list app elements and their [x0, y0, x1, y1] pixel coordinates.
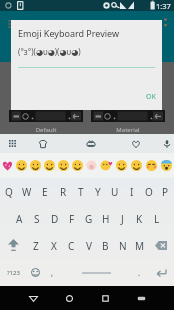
button[interactable]: Switch keyboard [123, 286, 159, 310]
button[interactable]: Objects [83, 134, 99, 153]
button[interactable]: Favorites [128, 134, 144, 153]
button[interactable]: More options [161, 18, 169, 26]
button[interactable]: Emoji 5 [70, 153, 84, 178]
staticText: Z [33, 239, 39, 253]
button[interactable]: Emoji 2 [28, 153, 42, 178]
button[interactable]: J [114, 205, 131, 232]
button[interactable]: B [97, 232, 114, 259]
button[interactable]: Emoji 4 [56, 153, 70, 178]
staticText: T [78, 185, 84, 199]
button[interactable]: A [10, 205, 28, 232]
button[interactable]: M [131, 232, 148, 259]
staticText: G [85, 212, 93, 226]
button[interactable]: H [97, 205, 114, 232]
button[interactable]: Z [27, 232, 45, 259]
staticText: S [34, 212, 40, 226]
button[interactable]: D [46, 205, 63, 232]
staticText: F [69, 212, 75, 226]
button[interactable]: Emoji 1 [14, 153, 28, 178]
button[interactable]: ?123 [0, 259, 27, 286]
staticText: J [121, 212, 124, 226]
staticText: 1:37 [156, 1, 171, 11]
button[interactable]: OK [142, 89, 160, 105]
staticText: O [145, 185, 153, 199]
button[interactable]: Emoji 8 [114, 153, 129, 178]
staticText: Y [95, 185, 101, 199]
staticText: (°з°)(◕υ◕)(◕υ◕) [18, 46, 81, 57]
button[interactable]: E [36, 178, 54, 205]
staticText: X [51, 239, 57, 253]
button[interactable]: Back [15, 286, 51, 310]
button[interactable]: Emoji 3 [42, 153, 56, 178]
button[interactable]: Emoji 6 [84, 153, 99, 178]
button[interactable]: Menu [3, 18, 15, 30]
staticText: Q [5, 185, 13, 199]
staticText: Default [9, 126, 83, 134]
button[interactable]: G [80, 205, 97, 232]
button[interactable]: Space [61, 259, 131, 286]
staticText: . [138, 267, 141, 278]
button[interactable]: N [114, 232, 131, 259]
button[interactable]: C [63, 232, 80, 259]
staticText: K [136, 212, 143, 226]
staticText: Material [91, 126, 165, 134]
staticText: W [22, 185, 32, 199]
staticText: R [60, 185, 67, 199]
staticText: B [102, 239, 109, 253]
button[interactable]: Emoji keyboard [27, 259, 44, 286]
staticText: OK [146, 92, 156, 102]
button[interactable]: I [123, 178, 140, 205]
button[interactable]: , [44, 259, 61, 286]
staticText: I [130, 185, 134, 199]
button[interactable]: X [45, 232, 63, 259]
button[interactable]: Shift [0, 232, 27, 259]
staticText: H [102, 212, 110, 226]
button[interactable]: Home [51, 286, 87, 310]
staticText: L [154, 212, 160, 226]
button[interactable]: . [131, 259, 148, 286]
button[interactable]: Emoji 10 [144, 153, 159, 178]
staticText: N [119, 239, 127, 253]
staticText: U [111, 185, 119, 199]
button[interactable]: Voice input [159, 134, 174, 153]
staticText: , [51, 267, 54, 278]
button[interactable]: P [157, 178, 174, 205]
staticText: E [42, 185, 48, 199]
button[interactable]: V [80, 232, 97, 259]
button[interactable]: Emoji 7 [99, 153, 114, 178]
button[interactable]: T [72, 178, 89, 205]
button[interactable]: W [18, 178, 36, 205]
staticText: A [16, 212, 23, 226]
button[interactable]: Recents [87, 286, 123, 310]
staticText: V [86, 239, 92, 253]
button[interactable]: O [140, 178, 157, 205]
button[interactable]: Emoji 9 [129, 153, 144, 178]
staticText: D [51, 212, 59, 226]
staticText: Emoji Keyboard Preview [18, 27, 120, 39]
button[interactable]: People [35, 134, 51, 153]
staticText: C [68, 239, 75, 253]
button[interactable]: Backspace [148, 232, 174, 259]
button[interactable]: F [63, 205, 80, 232]
button[interactable]: Emoji 11 [159, 153, 174, 178]
button[interactable]: Y [89, 178, 106, 205]
button[interactable]: Emoji 0 [0, 153, 14, 178]
staticText: P [162, 185, 169, 199]
button[interactable]: S [28, 205, 46, 232]
button[interactable]: Q [0, 178, 18, 205]
button[interactable]: Recently used [5, 134, 21, 153]
button[interactable]: K [131, 205, 148, 232]
staticText: M [135, 239, 145, 253]
button[interactable]: R [54, 178, 72, 205]
staticText: ?123 [7, 269, 20, 277]
button[interactable]: Enter [148, 259, 174, 286]
button[interactable]: L [148, 205, 165, 232]
button[interactable]: Theme preview [91, 110, 165, 122]
button[interactable]: Theme preview [9, 110, 83, 122]
button[interactable]: U [106, 178, 123, 205]
